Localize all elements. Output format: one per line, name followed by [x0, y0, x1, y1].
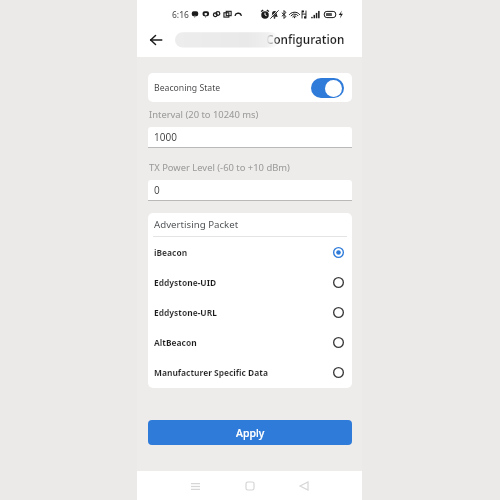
staticText: Configuration — [266, 32, 345, 48]
button[interactable]: Apply — [148, 420, 352, 445]
staticText: 1000 — [154, 130, 177, 144]
button[interactable]: Beaconing State — [148, 73, 352, 102]
staticText: Interval (20 to 10240 ms) — [149, 108, 259, 121]
staticText: Eddystone-URL — [154, 307, 217, 318]
button[interactable]: 1000 — [148, 127, 352, 147]
staticText: AltBeacon — [154, 337, 197, 348]
staticText: Advertising Packet — [154, 218, 239, 231]
staticText: 6:16 — [172, 9, 189, 21]
staticText: TX Power Level (-60 to +10 dBm) — [149, 161, 290, 174]
button[interactable]: Back — [291, 473, 317, 499]
button[interactable]: Eddystone-UID — [148, 267, 352, 297]
button[interactable]: Eddystone-URL — [148, 297, 352, 327]
staticText: 0 — [154, 183, 160, 197]
staticText: Manufacturer Specific Data — [154, 367, 268, 378]
button[interactable]: Back — [145, 29, 167, 51]
button[interactable]: iBeacon — [148, 237, 352, 267]
staticText: iBeacon — [154, 247, 188, 258]
button[interactable]: AltBeacon — [148, 327, 352, 357]
staticText: Eddystone-UID — [154, 277, 217, 288]
button[interactable]: 0 — [148, 180, 352, 200]
button[interactable]: Recent apps — [182, 473, 208, 499]
staticText: Beaconing State — [154, 82, 221, 94]
button[interactable]: Home — [237, 473, 263, 499]
button[interactable]: Manufacturer Specific Data — [148, 357, 352, 387]
staticText: Apply — [236, 426, 265, 440]
